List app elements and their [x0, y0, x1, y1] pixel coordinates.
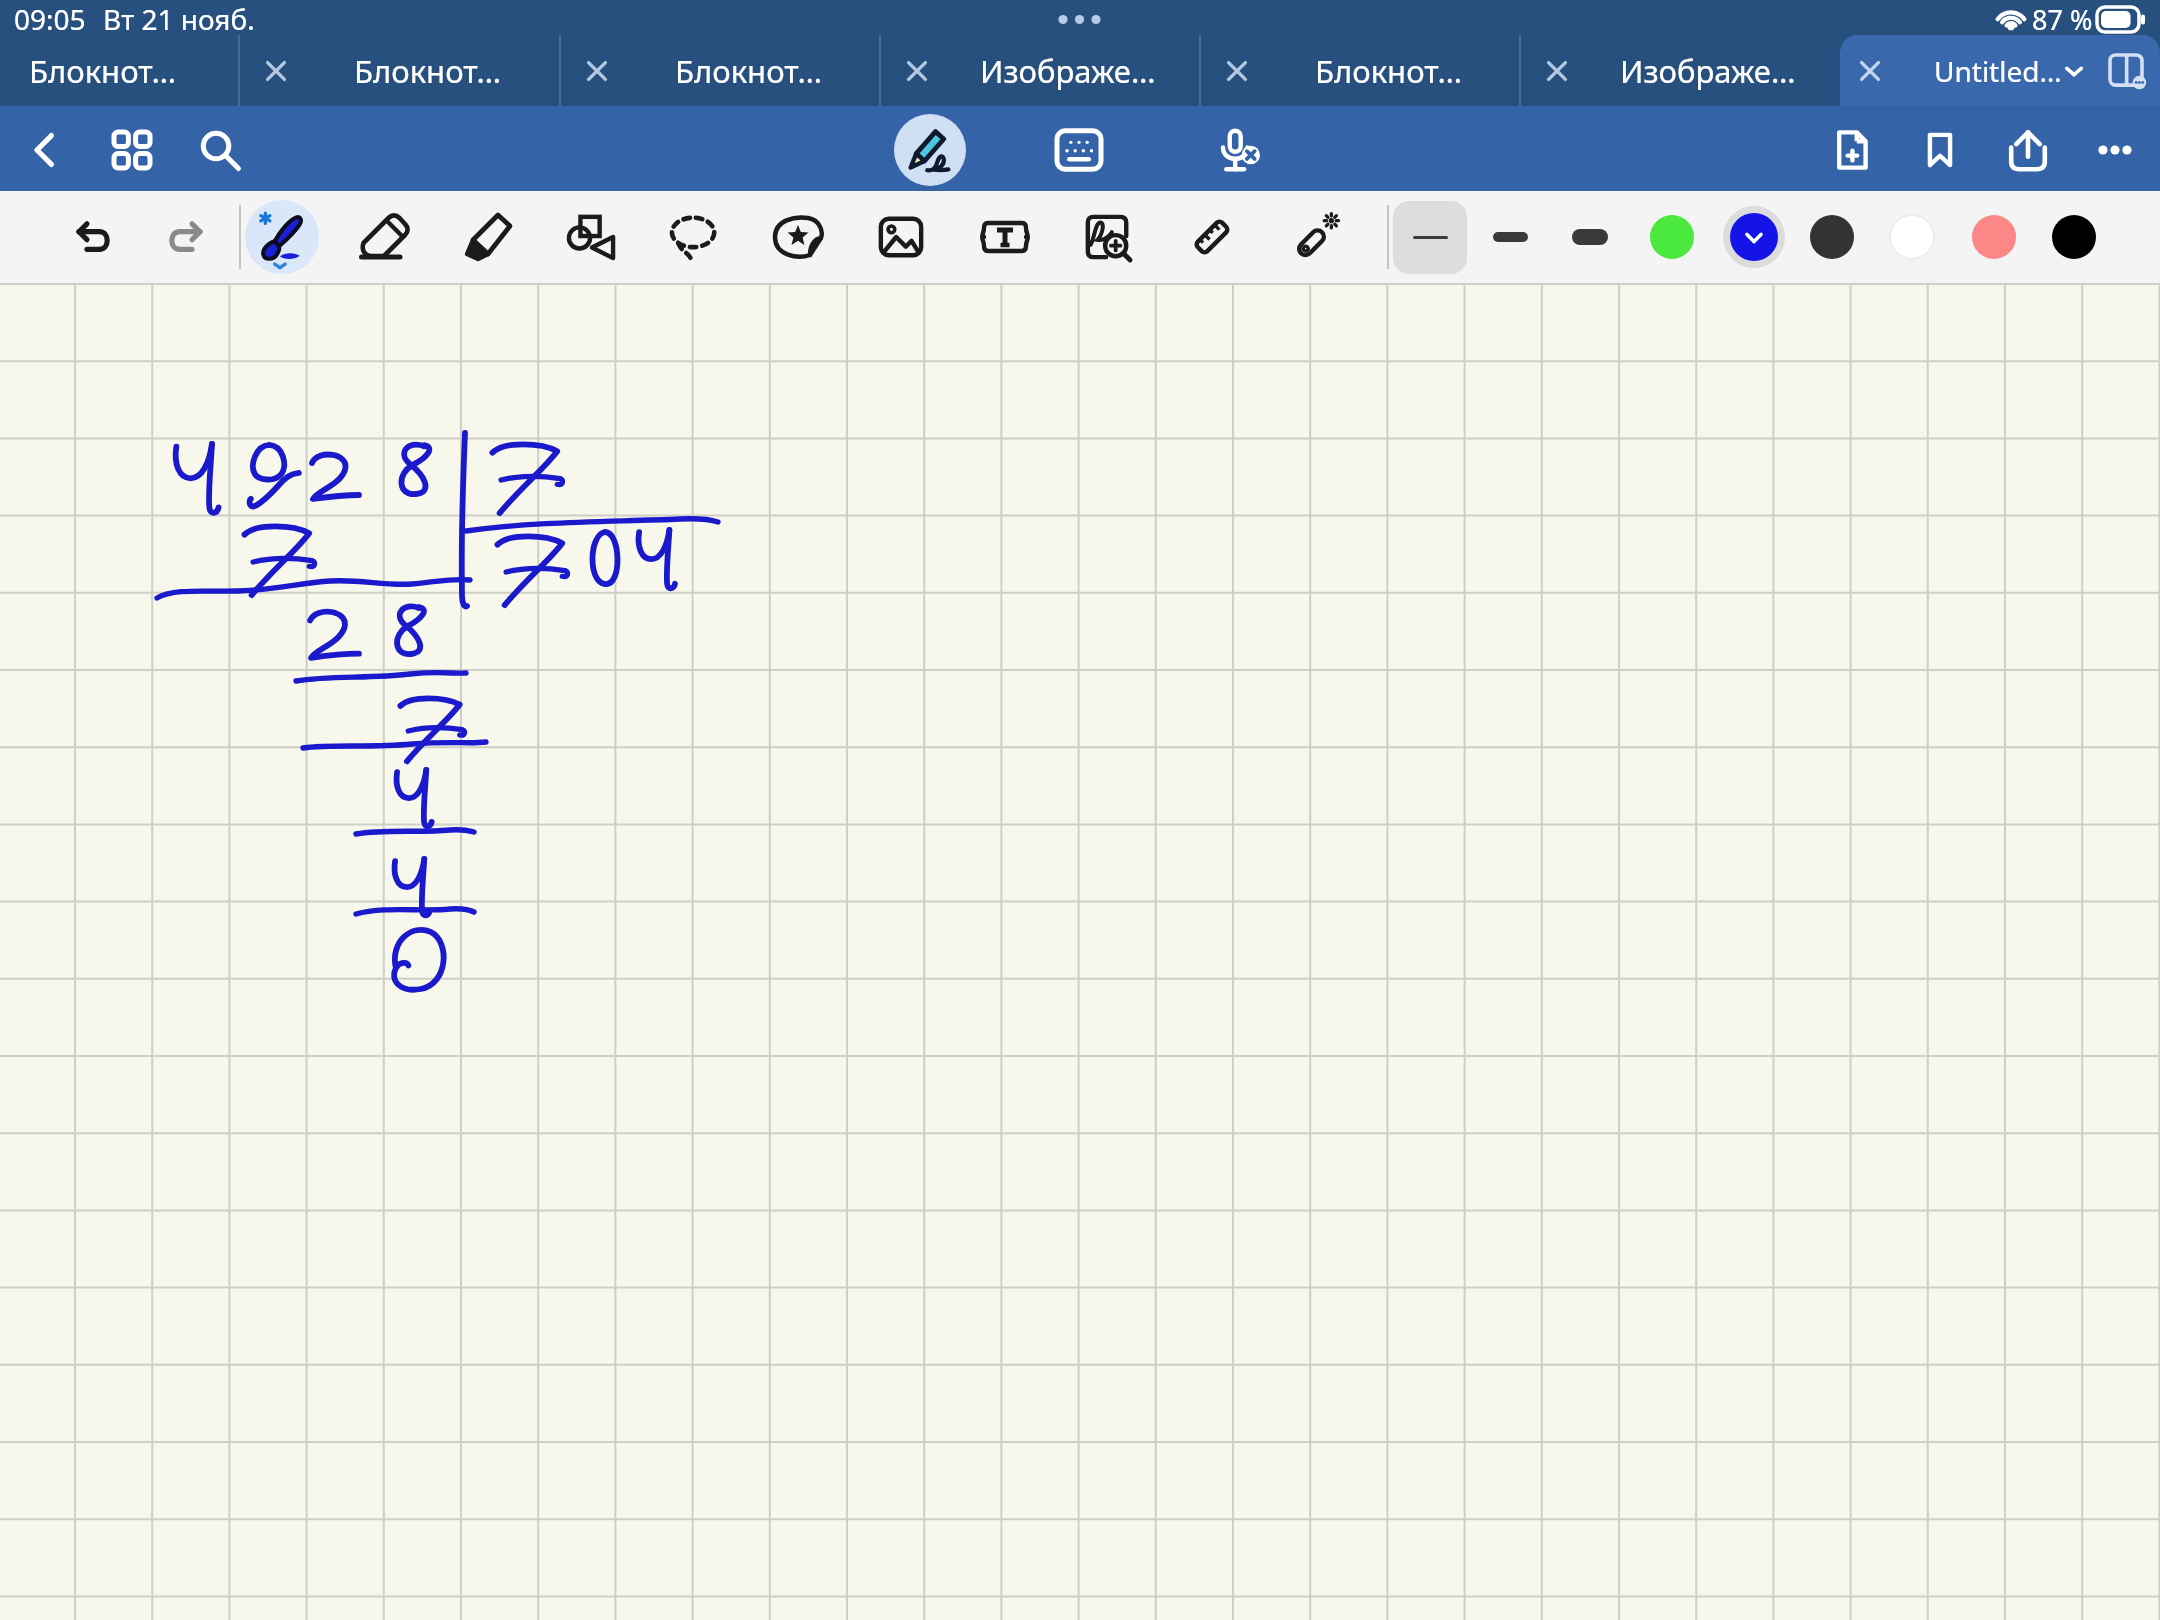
button[interactable]: Блокнот…	[239, 35, 560, 106]
button[interactable]: Medium stroke	[1473, 202, 1547, 272]
button[interactable]: White	[1875, 200, 1949, 274]
button[interactable]: Close tab	[1526, 35, 1588, 106]
button[interactable]: Image	[864, 200, 938, 274]
button[interactable]: Highlighter	[451, 200, 525, 274]
button[interactable]: Close tab	[1840, 35, 2160, 106]
button[interactable]: Split view	[2104, 49, 2148, 93]
button[interactable]: Black	[2037, 200, 2111, 274]
staticText: Untitled…	[1934, 52, 2062, 90]
staticText: Блокнот…	[675, 50, 822, 92]
button[interactable]: Ruler	[1175, 200, 1249, 274]
button[interactable]: Dark gray	[1795, 200, 1869, 274]
staticText: Изображе…	[1620, 50, 1796, 92]
button[interactable]: Tab options	[2054, 51, 2094, 91]
button[interactable]: Magic	[1279, 200, 1353, 274]
button[interactable]: Eraser	[348, 200, 422, 274]
button[interactable]: Microphone off	[1205, 116, 1273, 184]
button[interactable]: Pen	[894, 114, 966, 186]
button[interactable]: Close tab	[886, 35, 948, 106]
button[interactable]: Close tab	[1844, 35, 1896, 106]
button[interactable]: Shapes	[554, 200, 628, 274]
button[interactable]: Text box	[968, 200, 1042, 274]
button[interactable]: Close tab	[1846, 35, 1908, 106]
button[interactable]: Блокнот…	[0, 35, 239, 106]
button[interactable]: Close tab	[245, 35, 307, 106]
staticText: Изображе…	[980, 50, 1156, 92]
button[interactable]: Lasso	[657, 200, 731, 274]
button[interactable]: Bookmark	[1906, 116, 1974, 184]
button[interactable]: Back	[11, 116, 79, 184]
button[interactable]: Изображе…	[880, 35, 1200, 106]
staticText: Блокнот…	[1315, 50, 1462, 92]
button[interactable]: Close tab	[566, 35, 628, 106]
button[interactable]: Thin stroke	[1393, 201, 1467, 274]
button[interactable]: Keyboard	[1045, 116, 1113, 184]
button[interactable]: Brush	[245, 200, 319, 274]
button[interactable]: New page	[1818, 116, 1886, 184]
button[interactable]: Redo	[148, 200, 222, 274]
staticText: Блокнот…	[354, 50, 501, 92]
button[interactable]: Close tab	[1206, 35, 1268, 106]
button[interactable]: Thick stroke	[1553, 202, 1627, 272]
button[interactable]: Sticker	[761, 200, 835, 274]
button[interactable]: Search	[186, 116, 254, 184]
button[interactable]: Blue	[1717, 200, 1791, 274]
staticText: 87 %	[2032, 1, 2093, 38]
staticText: 09:05	[14, 0, 86, 38]
button[interactable]: Блокнот…	[1200, 35, 1520, 106]
button[interactable]: Undo	[57, 200, 131, 274]
button[interactable]: Pink	[1957, 200, 2031, 274]
button[interactable]: More	[2081, 116, 2149, 184]
button[interactable]: Блокнот…	[560, 35, 880, 106]
button[interactable]: Share	[1994, 116, 2062, 184]
button[interactable]: Изображе…	[1520, 35, 1840, 106]
button[interactable]: Green	[1635, 200, 1709, 274]
button[interactable]: Image search	[1071, 200, 1145, 274]
staticText: Блокнот…	[29, 50, 176, 92]
button[interactable]: Grid	[98, 116, 166, 184]
staticText: Вт 21 нояб.	[103, 0, 255, 38]
